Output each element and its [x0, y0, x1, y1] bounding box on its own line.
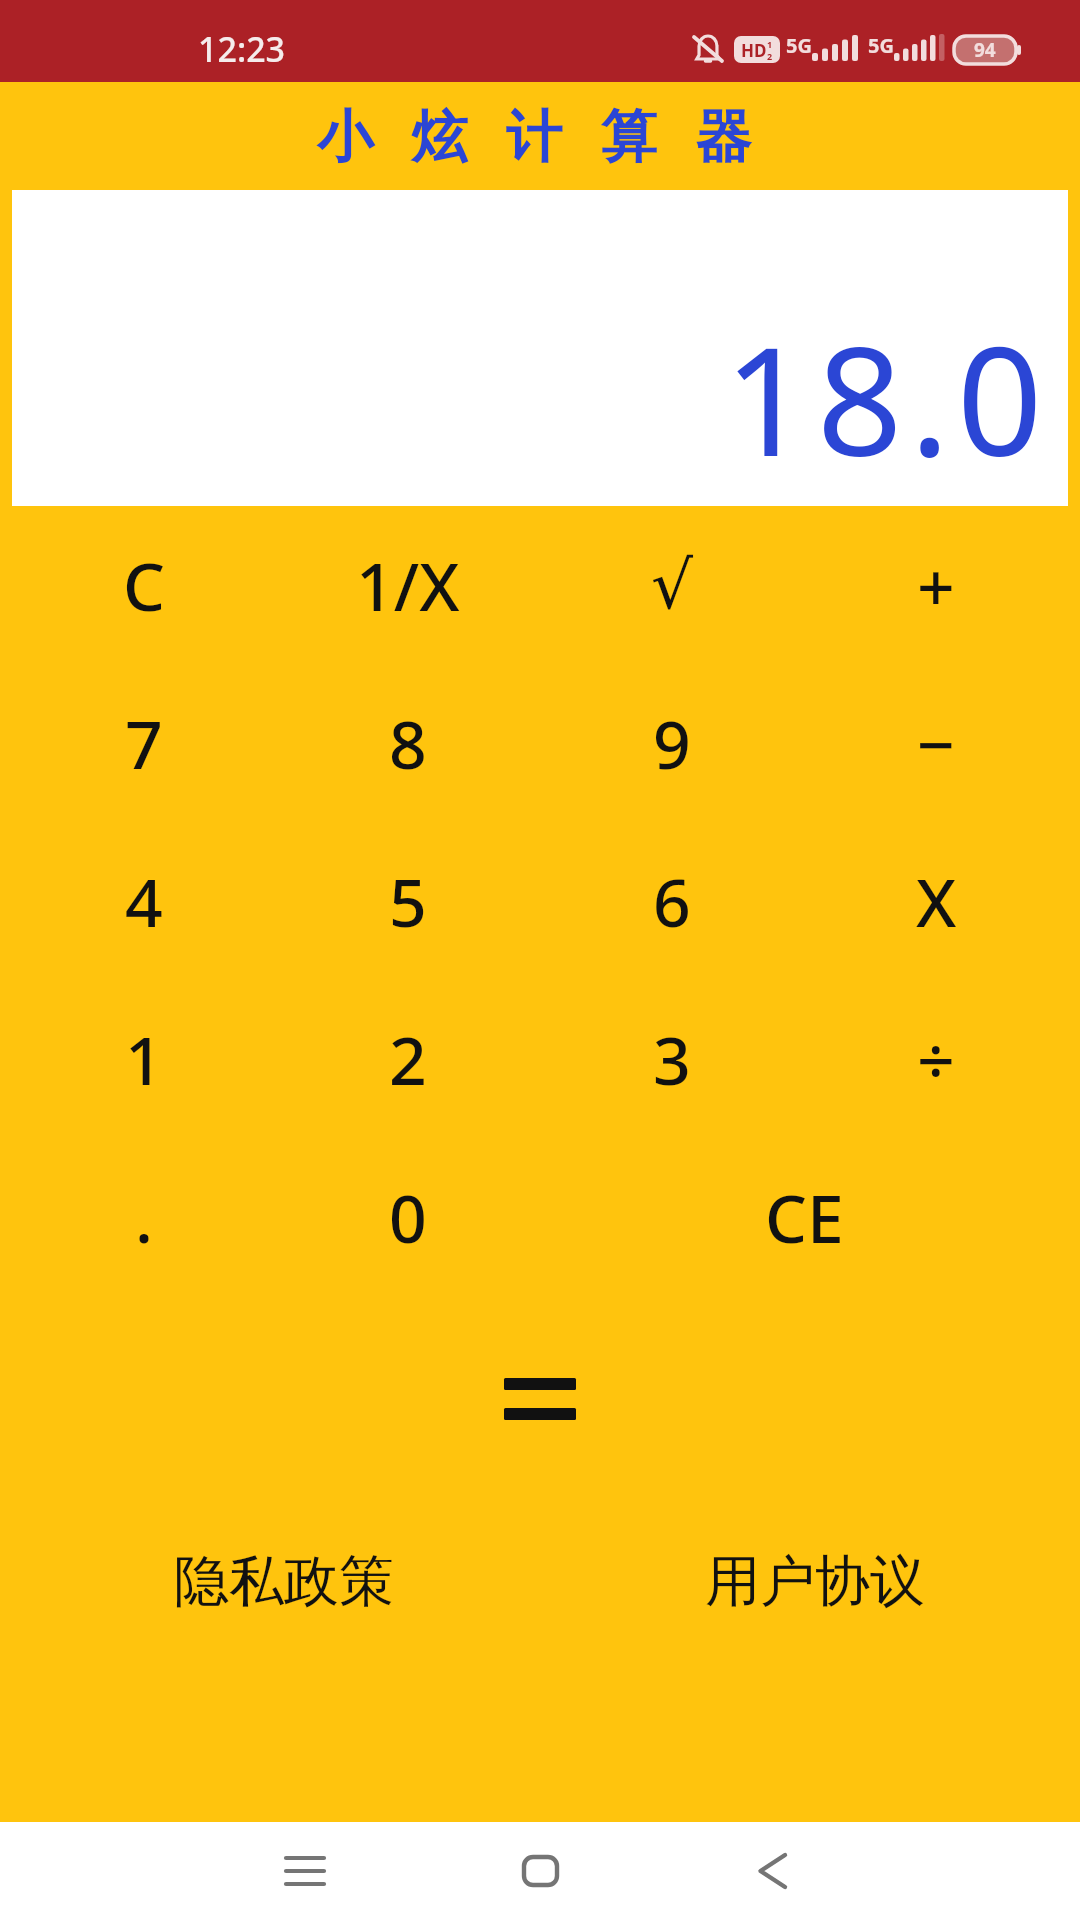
staticText: 用户协议: [705, 1547, 925, 1616]
button[interactable]: 6: [540, 822, 804, 980]
staticText: 7: [125, 698, 163, 788]
button[interactable]: +: [804, 506, 1068, 664]
button[interactable]: 8: [276, 664, 540, 822]
staticText: ÷: [917, 1014, 955, 1104]
staticText: −: [917, 698, 955, 788]
button[interactable]: X: [804, 822, 1068, 980]
staticText: C: [123, 540, 165, 630]
staticText: 5: [389, 856, 427, 946]
staticText: 0: [389, 1172, 427, 1262]
button[interactable]: 5: [276, 822, 540, 980]
button[interactable]: 4: [12, 822, 276, 980]
button[interactable]: 2: [276, 980, 540, 1138]
staticText: 8: [389, 698, 427, 788]
button[interactable]: .: [12, 1138, 276, 1296]
button[interactable]: 1/X: [276, 506, 540, 664]
button[interactable]: 0: [276, 1138, 540, 1296]
button[interactable]: 3: [540, 980, 804, 1138]
button[interactable]: 用户协议: [549, 1501, 1080, 1661]
staticText: 12:23: [198, 26, 286, 72]
button[interactable]: CE: [540, 1138, 1068, 1296]
staticText: 2: [389, 1014, 427, 1104]
button[interactable]: 隐私政策: [18, 1501, 549, 1661]
staticText: 2: [767, 50, 773, 62]
staticText: √: [651, 547, 694, 624]
staticText: X: [916, 856, 957, 946]
staticText: 4: [125, 856, 163, 946]
staticText: .: [135, 1172, 153, 1262]
staticText: 小 炫 计 算 器: [317, 96, 764, 172]
button[interactable]: 9: [540, 664, 804, 822]
button[interactable]: [742, 1841, 802, 1901]
staticText: CE: [765, 1172, 844, 1262]
button[interactable]: ÷: [804, 980, 1068, 1138]
button[interactable]: √: [540, 506, 804, 664]
staticText: 5G: [868, 32, 894, 59]
staticText: 1/X: [356, 540, 460, 630]
button[interactable]: 1: [12, 980, 276, 1138]
staticText: 1: [125, 1014, 163, 1104]
staticText: 18.0: [724, 296, 1050, 500]
button[interactable]: −: [804, 664, 1068, 822]
staticText: +: [917, 540, 955, 630]
button[interactable]: [275, 1841, 335, 1901]
button[interactable]: C: [12, 506, 276, 664]
staticText: 隐私政策: [174, 1547, 394, 1616]
staticText: 3: [653, 1014, 691, 1104]
staticText: 1: [767, 38, 773, 50]
button[interactable]: [490, 1364, 590, 1434]
staticText: 94: [974, 37, 996, 63]
staticText: 9: [653, 698, 691, 788]
staticText: 5G: [786, 32, 812, 59]
staticText: HD: [741, 39, 767, 62]
button[interactable]: [510, 1841, 570, 1901]
staticText: 6: [653, 856, 691, 946]
button[interactable]: 7: [12, 664, 276, 822]
